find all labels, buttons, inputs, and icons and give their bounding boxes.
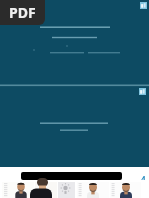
button[interactable]: Page count — [140, 173, 147, 180]
button[interactable]: Page marker — [140, 2, 147, 9]
button[interactable] — [21, 172, 122, 180]
button[interactable]: PDF — [0, 0, 45, 25]
staticText: PDF — [9, 3, 36, 22]
button[interactable]: Page 3 — [58, 182, 75, 198]
button[interactable]: Page 5 — [110, 182, 141, 198]
button[interactable]: Page 2 — [35, 182, 57, 198]
button[interactable]: Page 1 — [2, 182, 34, 198]
button[interactable]: Page 4 — [77, 182, 109, 198]
button[interactable]: Page marker — [139, 88, 146, 95]
staticText: 4 — [141, 173, 146, 180]
